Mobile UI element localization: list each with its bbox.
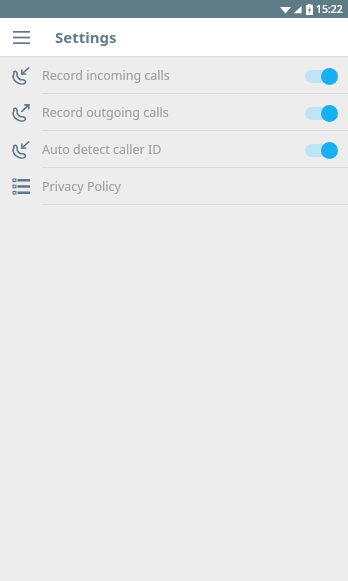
staticText: Settings xyxy=(55,27,117,47)
staticText: Auto detect caller ID xyxy=(42,141,304,158)
button[interactable]: Privacy Policy xyxy=(0,168,348,205)
staticText: Privacy Policy xyxy=(42,178,338,195)
button[interactable]: Record incoming calls toggle xyxy=(304,65,338,87)
button[interactable]: Record outgoing calls xyxy=(0,94,348,131)
button[interactable]: Auto detect caller ID toggle xyxy=(304,139,338,161)
staticText: Record outgoing calls xyxy=(42,104,304,121)
button[interactable]: Record incoming calls xyxy=(0,57,348,94)
button[interactable]: Auto detect caller ID xyxy=(0,131,348,168)
button[interactable]: Open navigation drawer xyxy=(5,21,37,53)
button[interactable]: Record outgoing calls toggle xyxy=(304,102,338,124)
staticText: 15:22 xyxy=(316,2,343,16)
staticText: Record incoming calls xyxy=(42,67,304,84)
